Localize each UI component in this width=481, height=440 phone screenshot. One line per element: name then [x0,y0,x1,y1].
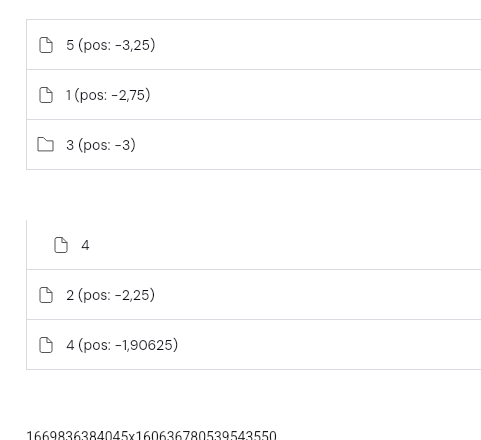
other: File [39,86,54,105]
other: File [39,36,54,55]
staticText: 1669836384045x160636780539543550 [26,429,277,440]
other: File [39,286,54,305]
button[interactable]: File [26,20,481,69]
staticText: 4 [81,236,90,254]
staticText: 4 (pos: −1,90625) [66,336,178,354]
staticText: 3 (pos: −3) [66,136,136,154]
button[interactable]: File [26,270,481,319]
other: Folder [37,136,55,153]
staticText: 2 (pos: −2,25) [66,286,155,304]
button[interactable]: File [26,70,481,119]
other: File [39,336,54,355]
button[interactable]: Folder [26,120,481,169]
button[interactable]: File [26,220,481,269]
other: File [54,236,69,255]
button[interactable]: File [26,320,481,369]
staticText: 5 (pos: −3,25) [66,36,156,54]
staticText: 1 (pos: −2,75) [66,86,151,104]
